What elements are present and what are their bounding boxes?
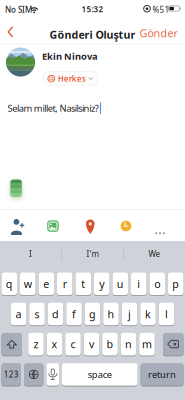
button[interactable]: I <box>0 241 61 267</box>
staticText: w <box>24 277 32 291</box>
button[interactable]: Back <box>0 21 14 43</box>
staticText: Selam millet, Nasilsiniz? <box>7 102 99 114</box>
staticText: l <box>165 307 168 321</box>
staticText: y <box>99 277 104 291</box>
staticText: k <box>145 307 151 321</box>
button[interactable]: k <box>140 303 156 325</box>
staticText: Gönderi Oluştur <box>49 28 135 42</box>
staticText: c <box>70 337 75 351</box>
button[interactable]: c <box>65 333 81 355</box>
staticText: x <box>51 337 57 351</box>
staticText: %51 <box>152 4 169 15</box>
staticText: u <box>117 277 124 291</box>
staticText: h <box>107 307 114 321</box>
button[interactable]: j <box>122 303 137 325</box>
button[interactable]: o <box>149 272 165 295</box>
staticText: We <box>148 249 160 259</box>
button[interactable]: n <box>121 333 136 355</box>
staticText: Ekin Ninova <box>42 50 98 62</box>
button[interactable]: Check in <box>83 216 98 237</box>
staticText: f <box>72 307 76 321</box>
button[interactable]: Return <box>140 363 183 386</box>
button[interactable]: w <box>20 272 35 295</box>
staticText: Gönder <box>139 26 177 40</box>
button[interactable]: q <box>1 272 17 295</box>
staticText: b <box>106 337 113 351</box>
staticText: return <box>148 368 176 381</box>
staticText: o <box>154 277 160 291</box>
button[interactable]: g <box>85 303 100 325</box>
button[interactable]: i <box>131 272 146 295</box>
staticText: q <box>6 277 13 291</box>
button[interactable]: I'm <box>62 241 123 267</box>
button[interactable]: m <box>139 333 155 355</box>
staticText: Herkes <box>58 73 86 84</box>
staticText: space <box>88 368 112 381</box>
button[interactable]: a <box>11 303 26 325</box>
button[interactable]: r <box>57 272 72 295</box>
button[interactable]: z <box>28 333 44 355</box>
button[interactable]: f <box>66 303 82 325</box>
button[interactable]: l <box>159 303 174 325</box>
staticText: e <box>43 277 49 291</box>
staticText: I <box>29 249 32 259</box>
button[interactable]: p <box>168 272 183 295</box>
staticText: i <box>137 277 140 291</box>
button[interactable]: Add photo <box>44 217 62 235</box>
button[interactable]: t <box>75 272 91 295</box>
button[interactable]: Tag people <box>8 216 27 238</box>
button[interactable]: Shift <box>1 333 22 355</box>
button[interactable]: Dictate <box>46 363 59 386</box>
button[interactable]: Gönder <box>139 21 185 45</box>
button[interactable]: d <box>48 303 63 325</box>
button[interactable]: Numbers <box>1 363 21 386</box>
staticText: z <box>33 337 38 351</box>
staticText: 123 <box>4 369 19 380</box>
staticText: No SIM <box>5 4 32 15</box>
staticText: j <box>128 307 131 321</box>
button[interactable]: Delete <box>163 333 183 355</box>
button[interactable]: u <box>112 272 128 295</box>
staticText: d <box>52 307 59 321</box>
button[interactable]: Next keyboard <box>24 363 43 386</box>
staticText: n <box>125 337 132 351</box>
button[interactable]: v <box>84 333 99 355</box>
staticText: m <box>142 337 152 351</box>
button[interactable]: Post background <box>10 180 22 197</box>
button[interactable]: s <box>29 303 45 325</box>
staticText: s <box>34 307 39 321</box>
staticText: p <box>172 277 179 291</box>
staticText: a <box>15 307 21 321</box>
button[interactable]: y <box>94 272 109 295</box>
button[interactable]: x <box>47 333 62 355</box>
button[interactable]: Profile <box>6 47 35 76</box>
button[interactable]: b <box>102 333 118 355</box>
button[interactable]: Audience: Herkes <box>42 71 98 86</box>
button[interactable]: We <box>124 241 185 267</box>
button[interactable]: Space <box>62 363 137 386</box>
staticText: g <box>89 307 96 321</box>
staticText: r <box>63 277 67 291</box>
button[interactable]: h <box>103 303 119 325</box>
button[interactable]: More options <box>152 226 168 240</box>
button[interactable]: e <box>38 272 54 295</box>
staticText: v <box>89 337 94 351</box>
staticText: I'm <box>86 249 98 259</box>
staticText: t <box>81 277 85 291</box>
staticText: 15:32 <box>81 4 103 14</box>
button[interactable]: Schedule <box>118 218 134 234</box>
